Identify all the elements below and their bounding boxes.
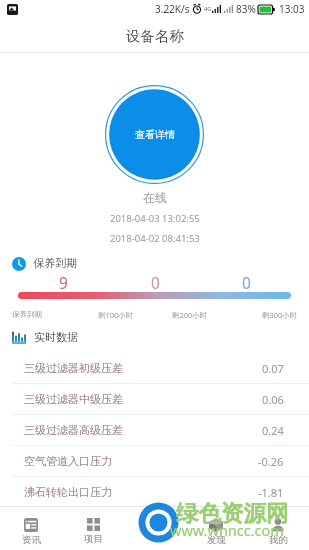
staticText: 剩200小时 bbox=[172, 310, 208, 320]
staticText: -1.81 bbox=[258, 485, 284, 500]
button[interactable]: 空气管道入口压力 bbox=[0, 446, 309, 476]
staticText: 剩300小时 bbox=[262, 310, 298, 320]
staticText: 设备名称 bbox=[126, 27, 184, 45]
staticText: 绿色资源网 bbox=[176, 499, 289, 527]
staticText: 4G bbox=[204, 5, 212, 12]
staticText: 发现 bbox=[207, 534, 226, 546]
button[interactable]: Mine bbox=[251, 507, 305, 550]
staticText: -0.26 bbox=[258, 454, 284, 469]
button[interactable]: 三级过滤器初级压差 bbox=[0, 353, 309, 383]
staticText: 13:03 bbox=[279, 2, 305, 16]
staticText: 剩100小时 bbox=[98, 310, 134, 320]
button[interactable]: 沸石转轮出口压力 bbox=[0, 477, 309, 507]
staticText: 0.06 bbox=[262, 392, 284, 407]
staticText: 83% bbox=[236, 2, 256, 16]
staticText: 0.07 bbox=[262, 361, 284, 376]
staticText: 查看详情 bbox=[135, 128, 175, 141]
staticText: 空气管道入口压力 bbox=[24, 454, 112, 468]
staticText: 0 bbox=[242, 272, 251, 293]
staticText: 沸石转轮出口压力 bbox=[24, 485, 112, 499]
staticText: 0.24 bbox=[262, 423, 284, 438]
staticText: 保养到期 bbox=[33, 256, 77, 270]
button[interactable]: News bbox=[4, 507, 58, 550]
staticText: 2018-04-03 13:02:55 bbox=[110, 212, 200, 225]
staticText: 保养到期 bbox=[12, 310, 42, 319]
staticText: 三级过滤器中级压差 bbox=[24, 392, 123, 406]
staticText: 项目 bbox=[84, 533, 103, 545]
staticText: 实时数据 bbox=[34, 330, 78, 344]
staticText: 0 bbox=[151, 272, 160, 293]
staticText: 在线 bbox=[143, 190, 167, 205]
button[interactable]: 三级过滤器中级压差 bbox=[0, 384, 309, 414]
staticText: 三级过滤器高级压差 bbox=[24, 423, 123, 437]
button[interactable]: Projects bbox=[66, 507, 120, 550]
staticText: 资讯 bbox=[22, 534, 41, 546]
button[interactable]: 三级过滤器高级压差 bbox=[0, 415, 309, 445]
staticText: 9 bbox=[59, 272, 68, 293]
button[interactable]: Discover bbox=[189, 507, 243, 550]
staticText: 2018-04-02 08:41:53 bbox=[110, 232, 200, 245]
staticText: 三级过滤器初级压差 bbox=[24, 361, 123, 375]
button[interactable]: 查看详情 bbox=[105, 85, 204, 184]
staticText: 我的 bbox=[269, 534, 288, 546]
staticText: 3.22K/s bbox=[155, 2, 190, 16]
staticText: www.wnncc.com bbox=[170, 520, 284, 540]
